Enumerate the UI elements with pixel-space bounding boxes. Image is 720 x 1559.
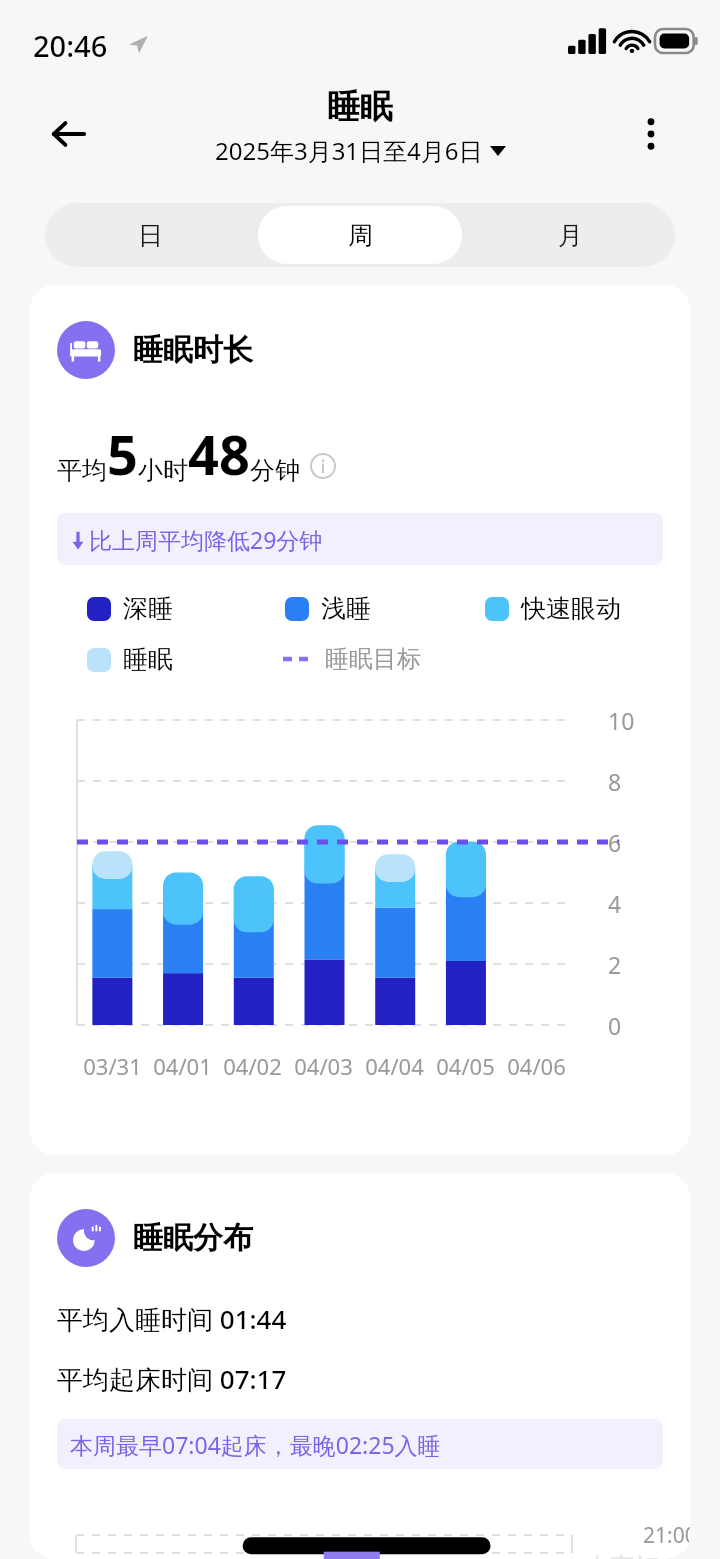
button[interactable]: 周 (258, 206, 462, 264)
staticText: 平均起床时间 07:17 (57, 1361, 287, 1397)
button[interactable]: Info (310, 453, 336, 479)
staticText: 平均入睡时间 01:44 (57, 1301, 287, 1337)
staticText: 04/06 (507, 1051, 566, 1081)
staticText: 睡眠目标 (325, 644, 421, 674)
staticText: 0 (608, 1010, 622, 1041)
staticText: 20:46 (33, 26, 108, 65)
button[interactable]: 睡眠目标 (283, 644, 421, 674)
staticText: 4 (608, 888, 622, 919)
staticText: 日 (138, 220, 163, 251)
staticText: 5 (107, 417, 138, 491)
staticText: 分钟 (250, 455, 300, 486)
staticText: 快速眼动 (521, 593, 621, 624)
staticText: 小时 (138, 455, 188, 486)
staticText: 04/03 (294, 1051, 353, 1081)
staticText: 周 (348, 220, 373, 251)
button[interactable]: 睡眠时长 (57, 321, 253, 379)
staticText: 2 (608, 949, 622, 980)
button[interactable]: 快速眼动 (485, 593, 621, 624)
staticText: 深睡 (123, 593, 173, 624)
staticText: 04/04 (365, 1051, 424, 1081)
staticText: 10 (608, 705, 635, 736)
staticText: 48 (188, 417, 250, 491)
button[interactable]: 月 (468, 206, 672, 264)
staticText: 04/01 (153, 1051, 212, 1081)
staticText: 平均 (57, 455, 107, 486)
staticText: 6 (608, 827, 622, 858)
button[interactable]: 浅睡 (285, 593, 371, 624)
button[interactable]: 2025年3月31日至4月6日 (215, 134, 506, 167)
button[interactable]: 睡眠分布 (57, 1209, 253, 1267)
button[interactable]: More options (620, 98, 682, 170)
staticText: 浅睡 (321, 593, 371, 624)
staticText: 04/05 (436, 1051, 495, 1081)
staticText: 睡眠 (327, 86, 393, 128)
staticText: 大家坛@Luci (585, 1549, 690, 1559)
staticText: 2025年3月31日至4月6日 (215, 134, 483, 167)
staticText: 睡眠分布 (133, 1219, 253, 1257)
staticText: 8 (608, 766, 622, 797)
staticText: 04/02 (223, 1051, 282, 1081)
staticText: 本周最早07:04起床，最晚02:25入睡 (70, 1429, 441, 1460)
staticText: 比上周平均降低29分钟 (89, 524, 323, 555)
button[interactable]: 深睡 (87, 593, 173, 624)
staticText: 睡眠 (123, 644, 173, 675)
staticText: 21:00 (643, 1521, 690, 1550)
staticText: 03/31 (83, 1051, 142, 1081)
button[interactable]: 睡眠 (87, 644, 173, 675)
button[interactable]: Back (33, 98, 105, 170)
staticText: 月 (558, 220, 583, 251)
staticText: 睡眠时长 (133, 331, 253, 369)
button[interactable]: 日 (48, 206, 252, 264)
